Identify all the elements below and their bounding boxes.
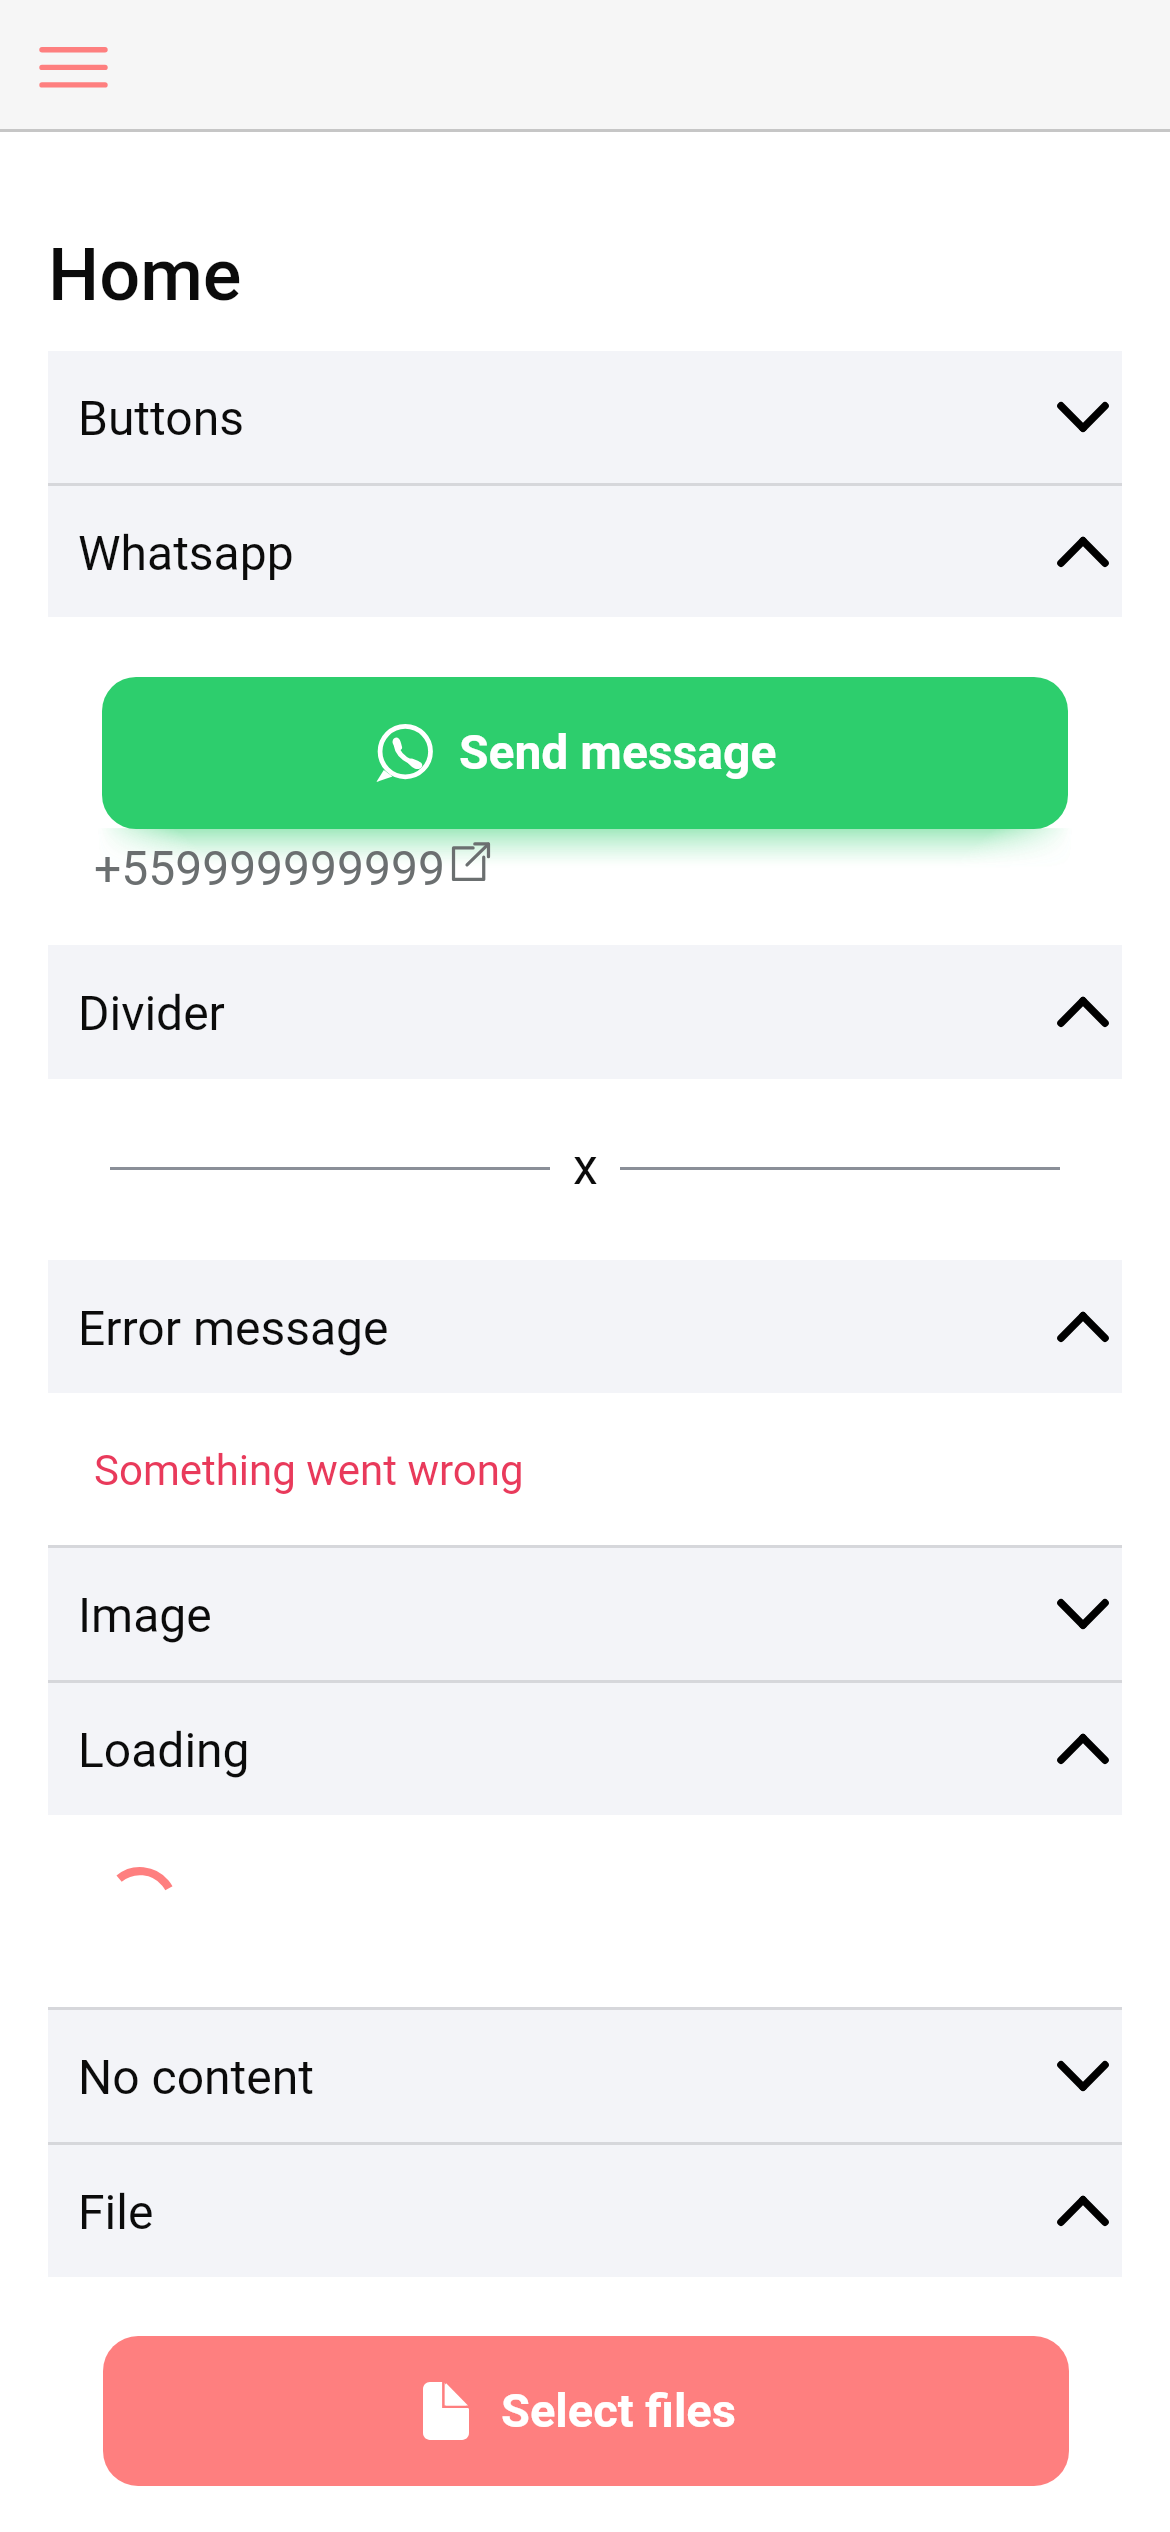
staticText: Send message (459, 724, 777, 780)
staticText: Select files (501, 2383, 736, 2438)
staticText: File (78, 2184, 154, 2240)
button[interactable]: Send message (102, 677, 1068, 829)
button[interactable]: File (48, 2145, 1122, 2277)
staticText: No content (78, 2049, 314, 2105)
staticText: Image (78, 1587, 212, 1643)
staticText: +559999999999 (94, 840, 445, 896)
button[interactable]: Divider (48, 945, 1122, 1079)
staticText: Something went wrong (94, 1446, 524, 1495)
button[interactable]: Select files (103, 2336, 1069, 2486)
staticText: x (573, 1138, 598, 1197)
button[interactable]: Whatsapp (48, 486, 1122, 617)
button[interactable]: Loading (48, 1683, 1122, 1815)
staticText: Home (48, 233, 242, 317)
button[interactable]: Buttons (48, 351, 1122, 483)
button[interactable]: Open navigation menu (20, 29, 128, 101)
staticText: Error message (78, 1300, 389, 1356)
staticText: Whatsapp (78, 525, 294, 581)
button[interactable]: Image (48, 1548, 1122, 1680)
staticText: Divider (78, 985, 225, 1041)
button[interactable]: Error message (48, 1260, 1122, 1393)
staticText: Loading (78, 1722, 250, 1778)
button[interactable]: No content (48, 2010, 1122, 2142)
other: Loading (103, 1867, 177, 1941)
button[interactable]: +559999999999 (94, 839, 490, 897)
other: Open chat link (452, 842, 490, 880)
staticText: Buttons (78, 390, 244, 446)
